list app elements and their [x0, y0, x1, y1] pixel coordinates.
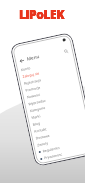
staticText: LiPoLEK: [19, 6, 65, 22]
staticText: Kategorie: [29, 105, 46, 113]
staticText: LiPoLEK: [19, 6, 65, 22]
staticText: LiPoLEK: [19, 6, 65, 22]
staticText: Dostawa: [35, 133, 50, 140]
staticText: Marki: [31, 113, 42, 120]
staticText: Promocje: [25, 84, 42, 93]
button[interactable]: Kategorie: [29, 96, 84, 114]
button[interactable]: Konto: [20, 55, 75, 73]
button[interactable]: Marki: [31, 103, 85, 121]
staticText: Zaloguj sie: [22, 70, 41, 79]
button[interactable]: Rejestracja: [23, 68, 78, 87]
button[interactable]: Kontakt: [33, 116, 85, 135]
staticText: Konto: [20, 65, 31, 72]
button[interactable]: Zaloguj sie: [22, 61, 77, 80]
button[interactable]: Promocje: [25, 75, 80, 94]
staticText: Regulamin: [42, 145, 61, 153]
button[interactable]: Wyprzedaz: [28, 89, 83, 107]
staticText: Rejestracja: [23, 77, 42, 86]
button[interactable]: Back: [17, 56, 26, 64]
staticText: Prywatnosc: [44, 151, 63, 160]
staticText: Wyprzedaz: [28, 98, 46, 106]
button[interactable]: Nowosci: [26, 82, 81, 100]
staticText: Menu: [26, 53, 40, 62]
staticText: Zwroty: [37, 140, 48, 147]
button[interactable]: Zwroty: [36, 130, 85, 148]
staticText: Nowosci: [26, 92, 41, 99]
button[interactable]: Blog: [32, 109, 85, 128]
button[interactable]: Search: [61, 47, 70, 55]
staticText: LiPoLEK: [19, 6, 65, 22]
staticText: Kontakt: [34, 126, 48, 134]
button[interactable]: Regulamin: [38, 137, 85, 155]
staticText: LiPoLEK: [19, 6, 65, 22]
button[interactable]: Dostawa: [35, 123, 85, 142]
button[interactable]: Prywatnosc: [39, 144, 85, 162]
staticText: Blog: [32, 120, 41, 127]
